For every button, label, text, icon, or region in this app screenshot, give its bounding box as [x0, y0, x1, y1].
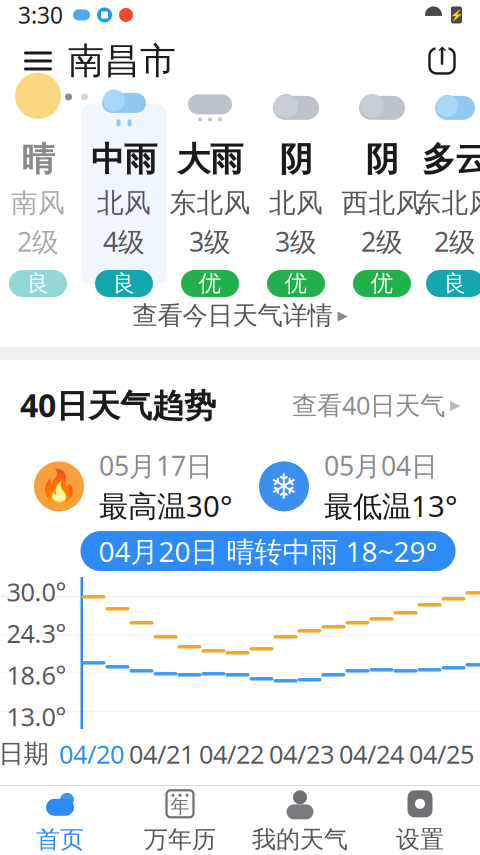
- button[interactable]: 设置: [360, 786, 480, 855]
- staticText: 2级: [361, 224, 403, 259]
- staticText: 3:30: [18, 0, 63, 30]
- staticText: 日期: [0, 738, 48, 769]
- staticText: 优: [370, 270, 393, 297]
- button[interactable]: 我的天气: [240, 786, 360, 855]
- button[interactable]: 查看今日天气详情: [0, 284, 480, 347]
- button[interactable]: 菜单: [16, 39, 60, 83]
- staticText: 04/22: [199, 737, 264, 771]
- staticText: 优: [198, 270, 221, 297]
- button[interactable]: 大雨: [167, 104, 253, 284]
- staticText: 中雨: [91, 139, 157, 180]
- staticText: 05月04日: [324, 448, 438, 483]
- staticText: 05月17日: [99, 448, 213, 483]
- staticText: 04/25: [409, 737, 474, 771]
- staticText: 南风: [11, 187, 65, 220]
- staticText: 04/24: [339, 737, 404, 771]
- button[interactable]: 阴: [253, 104, 339, 284]
- button[interactable]: 年: [120, 786, 240, 855]
- staticText: 04/21: [129, 737, 194, 771]
- staticText: 04/23: [269, 737, 334, 771]
- staticText: 良: [26, 270, 49, 297]
- staticText: 24.3°: [6, 616, 66, 650]
- staticText: 优: [284, 270, 307, 297]
- staticText: ▶: [450, 397, 460, 412]
- staticText: 30.0°: [6, 575, 66, 608]
- staticText: 大雨: [177, 139, 243, 180]
- staticText: 良: [112, 270, 135, 297]
- staticText: 2级: [17, 224, 59, 259]
- staticText: 3级: [189, 224, 231, 259]
- staticText: 东北风: [169, 187, 250, 220]
- staticText: 南昌市: [68, 39, 176, 83]
- staticText: 查看40日天气: [292, 388, 445, 422]
- staticText: 13.0°: [6, 700, 66, 733]
- staticText: 18.6°: [6, 658, 66, 692]
- staticText: 2级: [434, 224, 476, 259]
- staticText: 北风: [269, 187, 323, 220]
- staticText: 我的天气: [252, 825, 348, 854]
- button[interactable]: 首页: [0, 786, 120, 855]
- staticText: 万年历: [144, 825, 216, 854]
- staticText: 年: [170, 795, 189, 818]
- staticText: 设置: [396, 825, 444, 854]
- staticText: 晴: [21, 139, 54, 180]
- button[interactable]: 南昌市: [60, 33, 176, 89]
- staticText: 首页: [36, 825, 84, 854]
- staticText: 西北风: [341, 187, 422, 220]
- staticText: 04/20: [59, 737, 124, 771]
- button[interactable]: 晴: [0, 104, 81, 284]
- staticText: 东北风: [414, 187, 480, 220]
- staticText: ▶: [337, 308, 347, 323]
- staticText: 4级: [103, 224, 145, 259]
- staticText: 04月20日 晴转中雨 18~29°: [98, 532, 437, 570]
- button[interactable]: 查看40日天气: [292, 382, 460, 428]
- button[interactable]: 多云: [412, 104, 480, 284]
- staticText: 阴: [279, 139, 312, 180]
- button[interactable]: 分享: [420, 39, 464, 83]
- staticText: 3级: [275, 224, 317, 259]
- staticText: ↑: [435, 44, 450, 63]
- staticText: 阴: [365, 139, 398, 180]
- staticText: 北风: [97, 187, 151, 220]
- staticText: 查看今日天气详情: [132, 300, 332, 331]
- staticText: 良: [443, 270, 466, 297]
- staticText: 40日天气趋势: [20, 384, 216, 426]
- staticText: 最低温13°: [324, 486, 458, 525]
- staticText: 多云: [422, 139, 480, 180]
- staticText: ❄: [269, 467, 298, 506]
- staticText: 🔥: [39, 468, 79, 505]
- button[interactable]: 中雨: [81, 104, 167, 284]
- button[interactable]: 阴: [339, 104, 425, 284]
- staticText: ⚡: [450, 9, 463, 21]
- staticText: 最高温30°: [99, 486, 233, 525]
